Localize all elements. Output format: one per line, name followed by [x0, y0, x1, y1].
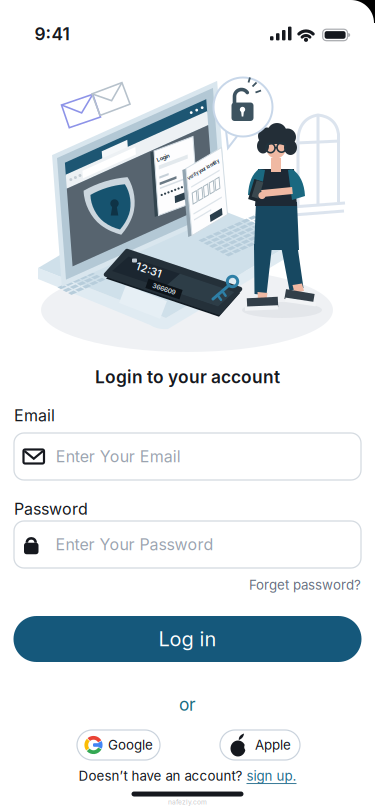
staticText: 9:41 — [34, 24, 69, 44]
button[interactable]: Apple — [220, 730, 300, 760]
staticText: Enter Your Password — [55, 535, 213, 554]
staticText: Email — [14, 406, 55, 425]
staticText: Google — [108, 737, 153, 753]
button[interactable]: Enter Your Password — [14, 521, 361, 568]
staticText: Forget password? — [249, 577, 361, 593]
staticText: Login to your account — [95, 367, 280, 387]
staticText: Login — [156, 155, 169, 161]
button[interactable]: Enter Your Email — [14, 433, 361, 480]
staticText: 366609 — [152, 285, 176, 293]
staticText: Enter Your Email — [56, 447, 181, 466]
button[interactable]: Log in — [13, 616, 361, 662]
button[interactable]: Google — [77, 730, 160, 760]
staticText: sign up. — [246, 768, 296, 784]
staticText: Password — [14, 500, 88, 518]
staticText: nafezly.com — [168, 798, 207, 806]
staticText: Apple — [255, 737, 291, 753]
button[interactable]: Forget password? — [249, 577, 361, 593]
staticText: or — [179, 694, 196, 715]
staticText: Doesn’t have an account? — [78, 768, 242, 784]
button[interactable]: sign up. — [246, 768, 296, 784]
staticText: 12:31 — [135, 264, 162, 276]
staticText: Log in — [158, 627, 216, 651]
staticText: Verify your identity — [185, 167, 221, 172]
